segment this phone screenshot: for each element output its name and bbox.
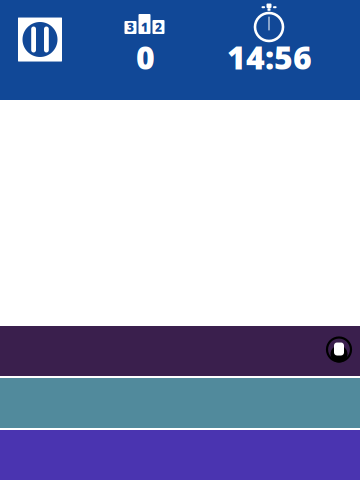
staticText: 0 <box>136 36 155 78</box>
button[interactable]: Pause <box>18 17 62 61</box>
staticText: 3 <box>127 19 134 35</box>
staticText: 14:56 <box>227 36 312 78</box>
staticText: 2 <box>155 19 162 35</box>
button[interactable]: Answer 1 <box>0 326 360 376</box>
staticText: 1 <box>141 19 148 35</box>
